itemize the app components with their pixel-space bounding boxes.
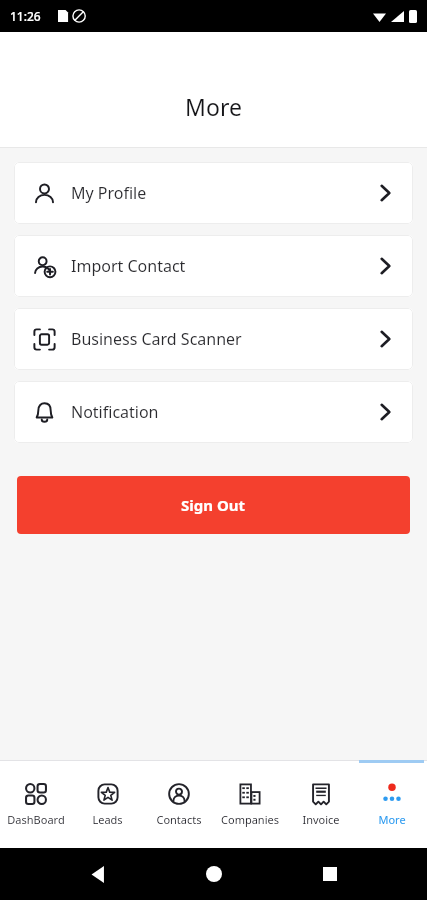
staticText: Companies xyxy=(221,812,279,827)
staticText: Notification xyxy=(71,401,159,423)
button[interactable]: Contacts xyxy=(143,760,214,848)
button[interactable]: Recents xyxy=(310,854,350,894)
staticText: More xyxy=(378,812,406,827)
button[interactable]: More xyxy=(356,760,427,848)
button[interactable]: Import Contact xyxy=(14,235,413,297)
staticText: My Profile xyxy=(71,182,147,204)
button[interactable]: DashBoard xyxy=(0,760,72,848)
button[interactable]: Business Card Scanner xyxy=(14,308,413,370)
staticText: Sign Out xyxy=(181,495,246,515)
staticText: 11:26 xyxy=(10,8,41,24)
button[interactable]: Invoice xyxy=(285,760,356,848)
button[interactable]: Sign Out xyxy=(17,476,410,534)
button[interactable]: My Profile xyxy=(14,162,413,224)
staticText: More xyxy=(185,91,242,122)
button[interactable]: Notification xyxy=(14,381,413,443)
button[interactable]: Back xyxy=(77,854,117,894)
staticText: Invoice xyxy=(302,812,340,827)
staticText: Leads xyxy=(92,812,123,827)
button[interactable]: Leads xyxy=(72,760,143,848)
staticText: Import Contact xyxy=(71,255,186,277)
staticText: Contacts xyxy=(156,812,202,827)
staticText: DashBoard xyxy=(7,812,65,827)
staticText: Business Card Scanner xyxy=(71,328,242,350)
button[interactable]: Home xyxy=(194,854,234,894)
button[interactable]: Companies xyxy=(214,760,285,848)
